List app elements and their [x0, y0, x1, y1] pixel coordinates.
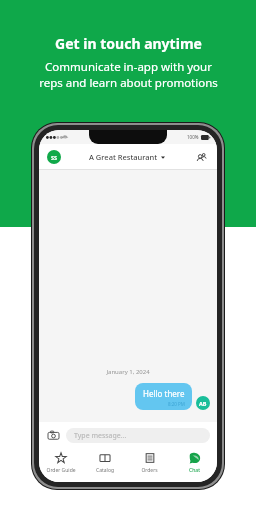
staticText: Orders [141, 467, 158, 474]
staticText: Catalog [96, 467, 114, 474]
staticText: 8:20 PM [168, 401, 185, 407]
button[interactable]: Orders [127, 448, 172, 482]
staticText: A Great Restaurant [89, 152, 158, 162]
button[interactable]: Type message... [66, 428, 210, 443]
staticText: Communicate in-app with your reps and le… [39, 59, 218, 90]
button[interactable]: Catalog [83, 448, 127, 482]
staticText: 100% [187, 134, 199, 140]
button[interactable]: Contacts [193, 149, 209, 165]
staticText: SS [51, 154, 58, 161]
button[interactable]: Profile [47, 150, 61, 164]
button[interactable]: A Great Restaurant [89, 152, 165, 162]
staticText: Order Guide [46, 467, 76, 474]
button[interactable]: Order Guide [39, 448, 83, 482]
staticText: AB [199, 400, 207, 407]
button[interactable]: Hello there [135, 383, 192, 410]
staticText: Get in touch anytime [55, 34, 202, 53]
button[interactable]: Chat [172, 448, 217, 482]
staticText: Hello there [143, 388, 185, 399]
button[interactable]: Camera [46, 428, 61, 443]
staticText: Type message... [74, 431, 127, 441]
staticText: January 1, 2024 [39, 368, 217, 376]
staticText: Chat [189, 467, 200, 474]
